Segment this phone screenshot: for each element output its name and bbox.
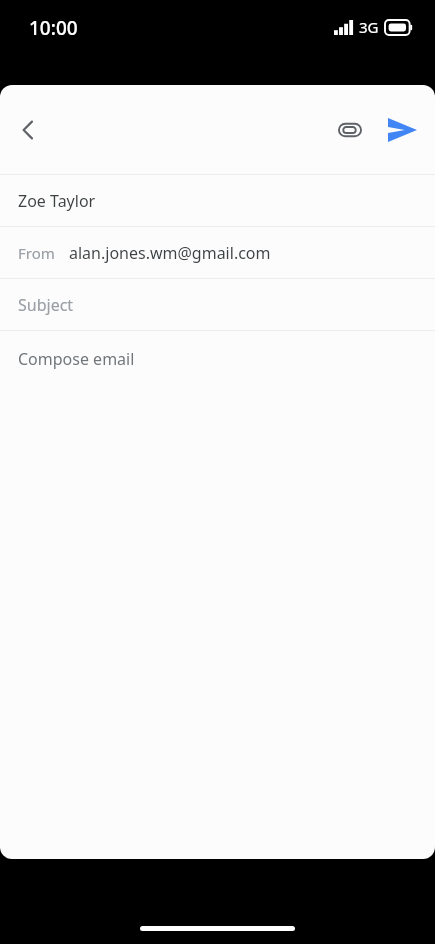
staticText: 10:00 [29,15,78,41]
button[interactable]: Subject [0,279,435,330]
staticText: From [18,243,55,263]
staticText: Subject [18,294,74,316]
staticText: alan.jones.wm@gmail.com [69,242,271,264]
staticText: Zoe Taylor [18,190,96,212]
button[interactable]: Compose email [0,331,435,859]
button[interactable]: Send [379,107,425,153]
button[interactable]: Zoe Taylor [0,175,435,226]
staticText: 3G [359,17,379,37]
button[interactable]: Back [4,106,52,154]
button[interactable]: Attach file [327,107,373,153]
staticText: Compose email [18,348,135,370]
button[interactable]: From [0,227,435,278]
